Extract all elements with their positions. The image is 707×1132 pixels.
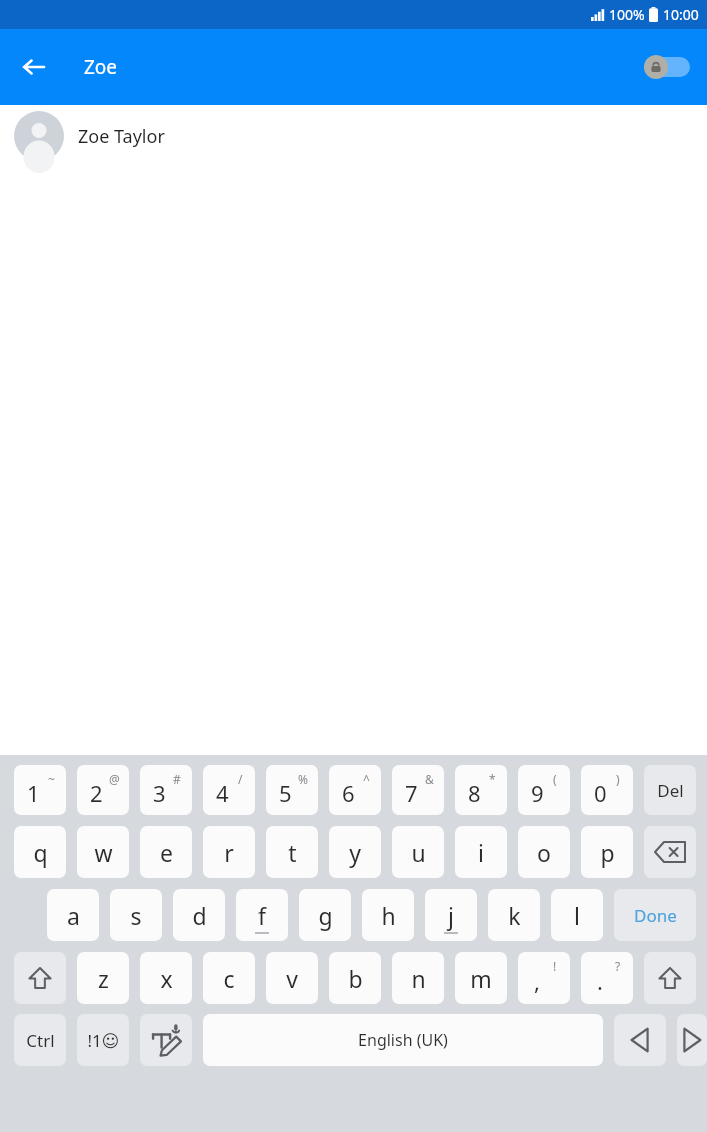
staticText: x	[160, 963, 173, 994]
staticText: b	[348, 963, 363, 994]
button[interactable]: 6	[329, 765, 381, 815]
button[interactable]: w	[77, 826, 129, 878]
staticText: s	[130, 900, 142, 931]
staticText: r	[224, 837, 234, 868]
button[interactable]: s	[110, 889, 162, 941]
button[interactable]: d	[173, 889, 225, 941]
button[interactable]: p	[581, 826, 633, 878]
button[interactable]: e	[140, 826, 192, 878]
button[interactable]: y	[329, 826, 381, 878]
staticText: 0	[594, 778, 607, 808]
staticText: *	[489, 771, 496, 787]
staticText: 9	[531, 778, 544, 808]
staticText: 3	[153, 778, 166, 808]
button[interactable]: Handwriting and voice input	[140, 1014, 192, 1066]
button[interactable]: Move cursor right	[677, 1014, 707, 1066]
staticText: 10:00	[663, 5, 699, 24]
button[interactable]: v	[266, 952, 318, 1004]
staticText: !	[553, 958, 557, 974]
button[interactable]: .	[581, 952, 633, 1004]
staticText: ~	[48, 771, 55, 787]
button[interactable]: 7	[392, 765, 444, 815]
button[interactable]: 4	[203, 765, 255, 815]
staticText: t	[288, 837, 297, 868]
staticText: 2	[90, 778, 103, 808]
button[interactable]: l	[551, 889, 603, 941]
button[interactable]: c	[203, 952, 255, 1004]
button[interactable]: 1	[14, 765, 66, 815]
button[interactable]: Shift	[644, 952, 696, 1004]
button[interactable]: Del	[644, 765, 696, 815]
staticText: English (UK)	[358, 1029, 448, 1051]
staticText: m	[470, 963, 492, 994]
button[interactable]: English (UK)	[203, 1014, 603, 1066]
button[interactable]: t	[266, 826, 318, 878]
staticText: Done	[634, 904, 677, 927]
button[interactable]: Backspace	[644, 826, 696, 878]
button[interactable]: !1☺	[77, 1014, 129, 1066]
staticText: w	[94, 837, 113, 868]
button[interactable]: 0	[581, 765, 633, 815]
staticText: 4	[216, 778, 229, 808]
staticText: /	[238, 771, 243, 787]
button[interactable]: o	[518, 826, 570, 878]
button[interactable]: 9	[518, 765, 570, 815]
button[interactable]: g	[299, 889, 351, 941]
button[interactable]: a	[47, 889, 99, 941]
staticText: #	[173, 771, 181, 787]
staticText: a	[67, 900, 80, 931]
button[interactable]: Ctrl	[14, 1014, 66, 1066]
staticText: &	[425, 771, 434, 787]
staticText: n	[411, 963, 426, 994]
staticText: j	[448, 900, 454, 931]
staticText: v	[286, 963, 298, 994]
staticText: Del	[657, 779, 684, 802]
button[interactable]: k	[488, 889, 540, 941]
staticText: Zoe	[84, 54, 118, 80]
button[interactable]: i	[455, 826, 507, 878]
button[interactable]: Shift	[14, 952, 66, 1004]
button[interactable]: Move cursor left	[614, 1014, 666, 1066]
staticText: e	[160, 837, 173, 868]
staticText: l	[574, 900, 580, 931]
staticText: g	[318, 900, 333, 931]
staticText: Zoe Taylor	[78, 124, 165, 149]
button[interactable]: x	[140, 952, 192, 1004]
button[interactable]: f	[236, 889, 288, 941]
staticText: k	[508, 900, 521, 931]
staticText: u	[411, 837, 426, 868]
button[interactable]: 5	[266, 765, 318, 815]
staticText: c	[223, 963, 235, 994]
button[interactable]: Back	[10, 43, 58, 91]
button[interactable]: 3	[140, 765, 192, 815]
button[interactable]: m	[455, 952, 507, 1004]
staticText: @	[109, 771, 120, 787]
button[interactable]: 2	[77, 765, 129, 815]
staticText: y	[349, 837, 361, 868]
button[interactable]: u	[392, 826, 444, 878]
staticText: ^	[363, 771, 370, 787]
staticText: i	[478, 837, 484, 868]
staticText: %	[298, 771, 308, 787]
staticText: h	[381, 900, 396, 931]
button[interactable]: Secure conversation toggle	[639, 45, 695, 89]
staticText: (	[553, 771, 557, 787]
button[interactable]: 8	[455, 765, 507, 815]
button[interactable]: n	[392, 952, 444, 1004]
button[interactable]: j	[425, 889, 477, 941]
staticText: 1	[27, 778, 40, 808]
button[interactable]: z	[77, 952, 129, 1004]
staticText: d	[192, 900, 207, 931]
button[interactable]: b	[329, 952, 381, 1004]
staticText: 100%	[609, 5, 645, 24]
staticText: Ctrl	[26, 1029, 55, 1052]
button[interactable]: Done	[614, 889, 696, 941]
staticText: !1☺	[87, 1029, 120, 1052]
button[interactable]: Zoe Taylor	[0, 105, 707, 167]
button[interactable]: h	[362, 889, 414, 941]
button[interactable]: ,	[518, 952, 570, 1004]
staticText: .	[597, 966, 603, 996]
staticText: ?	[615, 958, 621, 974]
button[interactable]: r	[203, 826, 255, 878]
button[interactable]: q	[14, 826, 66, 878]
